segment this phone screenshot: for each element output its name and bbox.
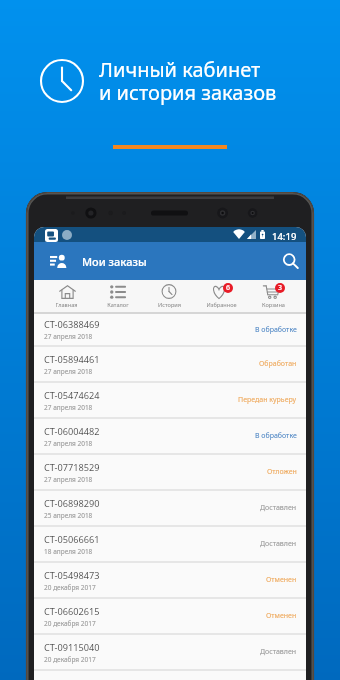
button[interactable]: 6 (195, 280, 247, 312)
staticText: Личный кабинет (99, 56, 261, 83)
button[interactable]: 3 (247, 280, 299, 312)
staticText: CT-05498473 (44, 569, 100, 582)
staticText: Доставлен (260, 647, 297, 657)
staticText: Передан курьеру (238, 395, 297, 405)
staticText: 27 апреля 2018 (44, 367, 93, 376)
staticText: и история заказов (99, 79, 277, 106)
button[interactable]: Главная (41, 280, 92, 312)
staticText: Доставлен (260, 503, 297, 513)
button[interactable]: История (143, 280, 195, 312)
staticText: CT-06388469 (44, 318, 100, 331)
button[interactable]: Поиск (276, 242, 306, 280)
button[interactable]: CT-06004482 (34, 419, 306, 453)
staticText: CT-09115040 (44, 641, 100, 654)
staticText: 20 декабря 2017 (44, 619, 96, 628)
staticText: Избранное (206, 301, 237, 309)
staticText: CT-06898290 (44, 497, 100, 510)
staticText: В обработке (255, 431, 297, 441)
staticText: 27 апреля 2018 (44, 439, 93, 448)
button[interactable]: CT-05474624 (34, 383, 306, 417)
button[interactable]: Каталог (92, 280, 143, 312)
staticText: Отложен (267, 467, 297, 477)
staticText: 3 (278, 283, 283, 293)
staticText: 6 (226, 283, 231, 293)
button[interactable]: CT-05894461 (34, 347, 306, 381)
staticText: CT-07718529 (44, 461, 100, 474)
staticText: 27 апреля 2018 (44, 475, 93, 484)
staticText: Главная (55, 301, 78, 309)
button[interactable]: CT-06602615 (34, 599, 306, 633)
button[interactable]: Личный кабинет (40, 242, 77, 280)
staticText: Мои заказы (82, 254, 147, 269)
staticText: Отменен (266, 611, 297, 621)
staticText: 27 апреля 2018 (44, 332, 93, 341)
button[interactable]: CT-09115040 (34, 635, 306, 669)
staticText: CT-05474624 (44, 389, 100, 402)
button[interactable]: CT-06388469 (34, 314, 306, 345)
button[interactable]: CT-05498473 (34, 563, 306, 597)
staticText: CT-05894461 (44, 353, 100, 366)
staticText: 20 декабря 2017 (44, 583, 96, 592)
staticText: 27 апреля 2018 (44, 403, 93, 412)
staticText: 14:19 (272, 230, 297, 243)
staticText: Корзина (262, 301, 285, 309)
staticText: CT-06602615 (44, 605, 100, 618)
staticText: Каталог (107, 301, 129, 309)
button[interactable]: CT-07718529 (34, 455, 306, 489)
button[interactable]: CT-06898290 (34, 491, 306, 525)
staticText: Отменен (266, 575, 297, 585)
staticText: В обработке (255, 325, 297, 335)
staticText: Обработан (259, 359, 297, 369)
staticText: 25 апреля 2018 (44, 511, 93, 520)
staticText: 20 декабря 2017 (44, 655, 96, 664)
staticText: История (158, 301, 181, 309)
staticText: Доставлен (260, 539, 297, 549)
staticText: 18 апреля 2018 (44, 547, 93, 556)
staticText: CT-06004482 (44, 425, 100, 438)
staticText: CT-05066661 (44, 533, 100, 546)
button[interactable]: CT-05066661 (34, 527, 306, 561)
